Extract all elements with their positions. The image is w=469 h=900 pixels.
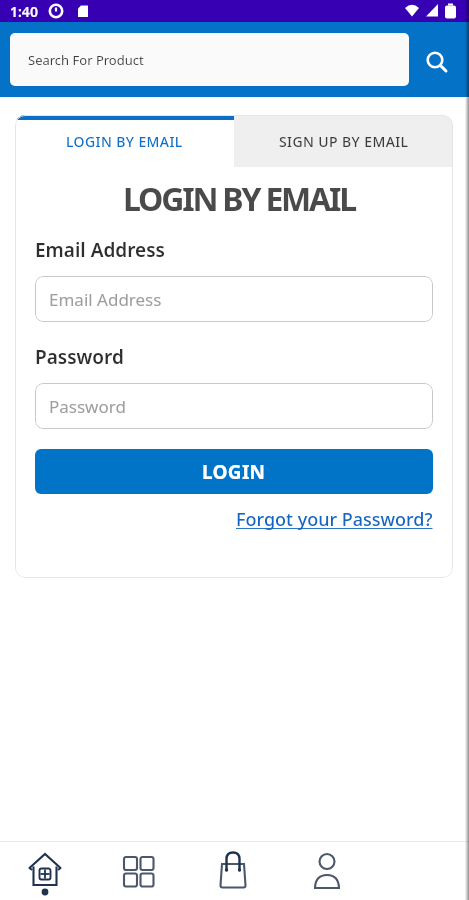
staticText: Search For Product [28, 51, 144, 69]
button[interactable]: SIGN UP BY EMAIL [234, 115, 453, 167]
button[interactable]: Forgot your Password? [236, 507, 433, 532]
staticText: Password [49, 395, 126, 418]
button[interactable]: LOGIN BY EMAIL [15, 115, 234, 167]
button[interactable] [280, 842, 374, 900]
staticText: LOGIN BY EMAIL [66, 132, 183, 151]
staticText: LOGIN [202, 459, 266, 485]
button[interactable]: Password [35, 383, 433, 429]
staticText: LOGIN BY EMAIL [20, 177, 453, 221]
staticText: Email Address [35, 237, 165, 263]
staticText: 1:40 [10, 2, 38, 21]
button[interactable]: Search For Product [10, 33, 409, 86]
button[interactable]: Email Address [35, 276, 433, 322]
button[interactable] [417, 40, 457, 80]
staticText: Forgot your Password? [236, 507, 433, 532]
staticText: Password [35, 344, 124, 370]
button[interactable] [0, 842, 92, 900]
button[interactable] [92, 842, 186, 900]
staticText: Email Address [49, 288, 162, 311]
button[interactable] [186, 842, 280, 900]
button[interactable]: LOGIN [35, 449, 433, 494]
staticText: SIGN UP BY EMAIL [279, 132, 409, 151]
